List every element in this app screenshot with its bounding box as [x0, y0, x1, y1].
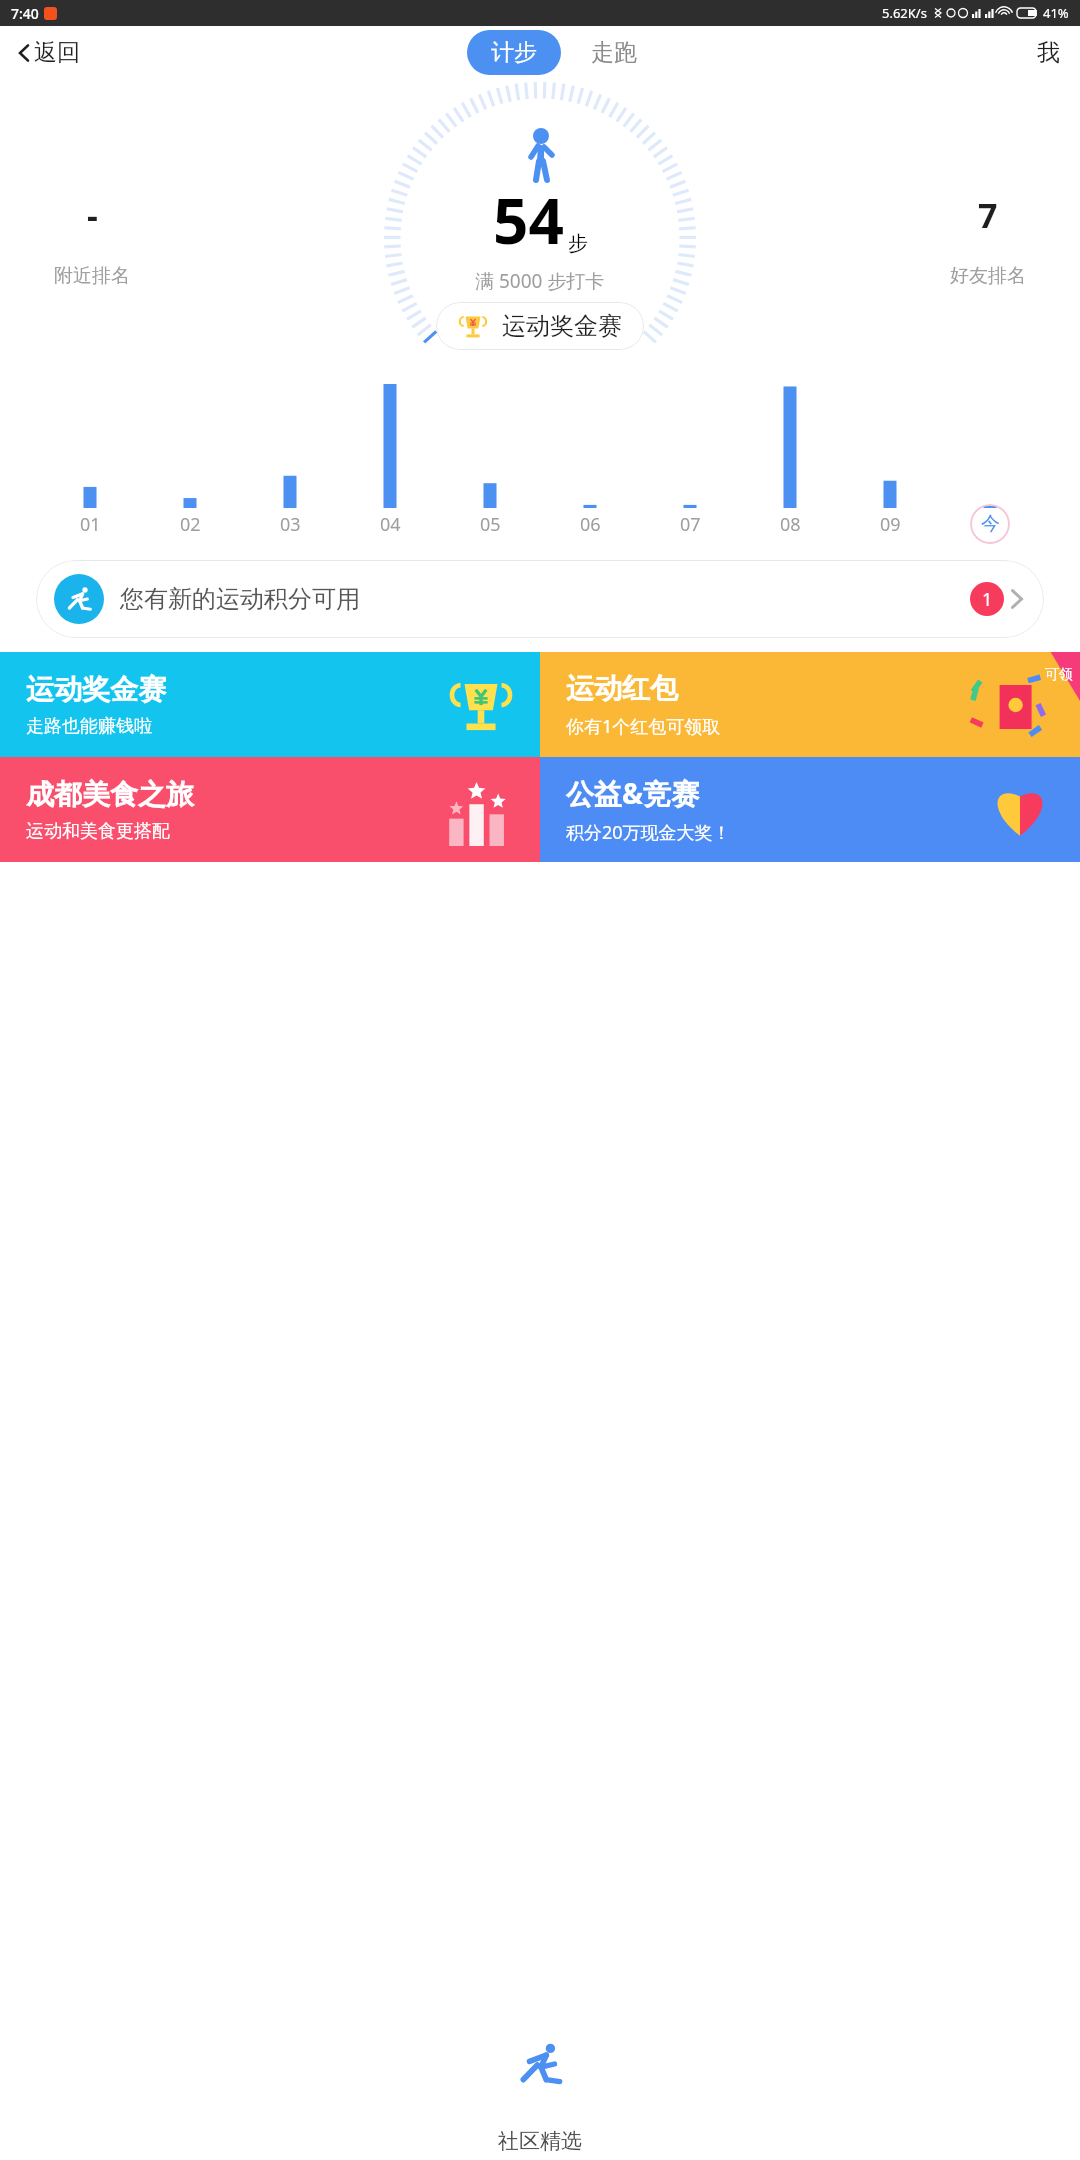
staticText: 可领 [1045, 666, 1073, 684]
staticText: 7 [978, 192, 998, 238]
button[interactable]: 成都美食之旅 [0, 757, 540, 862]
staticText: 公益&竞赛 [566, 774, 700, 812]
staticText: 积分20万现金大奖！ [566, 820, 731, 845]
button[interactable]: 您有新的运动积分可用 [36, 560, 1044, 638]
staticText: 步 [568, 231, 588, 256]
staticText: 今 [981, 512, 1000, 536]
button[interactable]: 我 [1029, 30, 1068, 75]
staticText: 02 [180, 512, 201, 537]
staticText: 你有1个红包可领取 [566, 714, 721, 739]
staticText: 03 [280, 512, 301, 537]
staticText: 附近排名 [54, 264, 130, 288]
button[interactable]: 返回 [12, 32, 84, 73]
staticText: 08 [780, 512, 801, 537]
staticText: 走跑 [591, 38, 637, 67]
staticText: 5.62K/s [882, 4, 927, 22]
staticText: 运动奖金赛 [502, 311, 622, 341]
staticText: 05 [480, 512, 501, 537]
staticText: 7:40 [11, 4, 39, 23]
button[interactable]: 运动红包 [540, 652, 1080, 757]
button[interactable]: 计步 [467, 30, 561, 75]
button[interactable]: 7 [950, 192, 1026, 288]
staticText: 运动和美食更搭配 [26, 820, 170, 843]
button[interactable]: Start run [492, 2016, 588, 2112]
staticText: 41% [1043, 4, 1069, 22]
staticText: 1 [982, 587, 993, 612]
staticText: 您有新的运动积分可用 [120, 584, 360, 614]
staticText: 返回 [34, 38, 80, 67]
staticText: 好友排名 [950, 264, 1026, 288]
staticText: 09 [880, 512, 901, 537]
staticText: 我 [1037, 38, 1060, 67]
staticText: - [87, 192, 98, 238]
button[interactable]: - [54, 192, 130, 288]
staticText: 社区精选 [498, 2128, 582, 2154]
staticText: 04 [380, 512, 401, 537]
staticText: 运动奖金赛 [26, 672, 166, 707]
staticText: 满 5000 步打卡 [475, 268, 605, 294]
button[interactable]: 公益&竞赛 [540, 757, 1080, 862]
staticText: 成都美食之旅 [26, 777, 194, 812]
button[interactable]: 走跑 [583, 30, 645, 75]
button[interactable]: 运动奖金赛 [0, 652, 540, 757]
staticText: 计步 [491, 38, 537, 67]
staticText: 01 [80, 512, 101, 537]
staticText: 运动红包 [566, 671, 678, 706]
staticText: 07 [680, 512, 701, 537]
button[interactable]: 运动奖金赛 [436, 302, 644, 350]
staticText: 06 [580, 512, 601, 537]
staticText: 走路也能赚钱啦 [26, 715, 152, 738]
staticText: 54 [493, 178, 564, 262]
button[interactable]: 今 [970, 504, 1010, 544]
